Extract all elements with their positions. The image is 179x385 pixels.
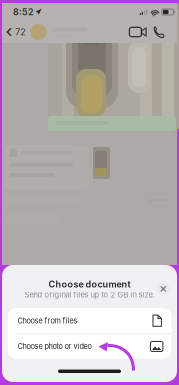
staticText: Send original files up to 2 GB in size. bbox=[24, 290, 154, 299]
staticText: 8:52 bbox=[13, 7, 33, 17]
button[interactable]: Video call bbox=[126, 23, 150, 41]
button[interactable]: Choose photo or video bbox=[8, 334, 171, 359]
staticText: 72 bbox=[15, 27, 25, 37]
staticText: Choose photo or video bbox=[18, 342, 92, 351]
button[interactable]: 72 bbox=[2, 24, 28, 40]
button[interactable]: Choose from files bbox=[8, 308, 171, 333]
button[interactable]: Close bbox=[157, 283, 169, 295]
staticText: Choose document bbox=[48, 279, 130, 290]
button[interactable]: Voice call bbox=[150, 23, 168, 41]
staticText: Choose from files bbox=[18, 316, 78, 325]
